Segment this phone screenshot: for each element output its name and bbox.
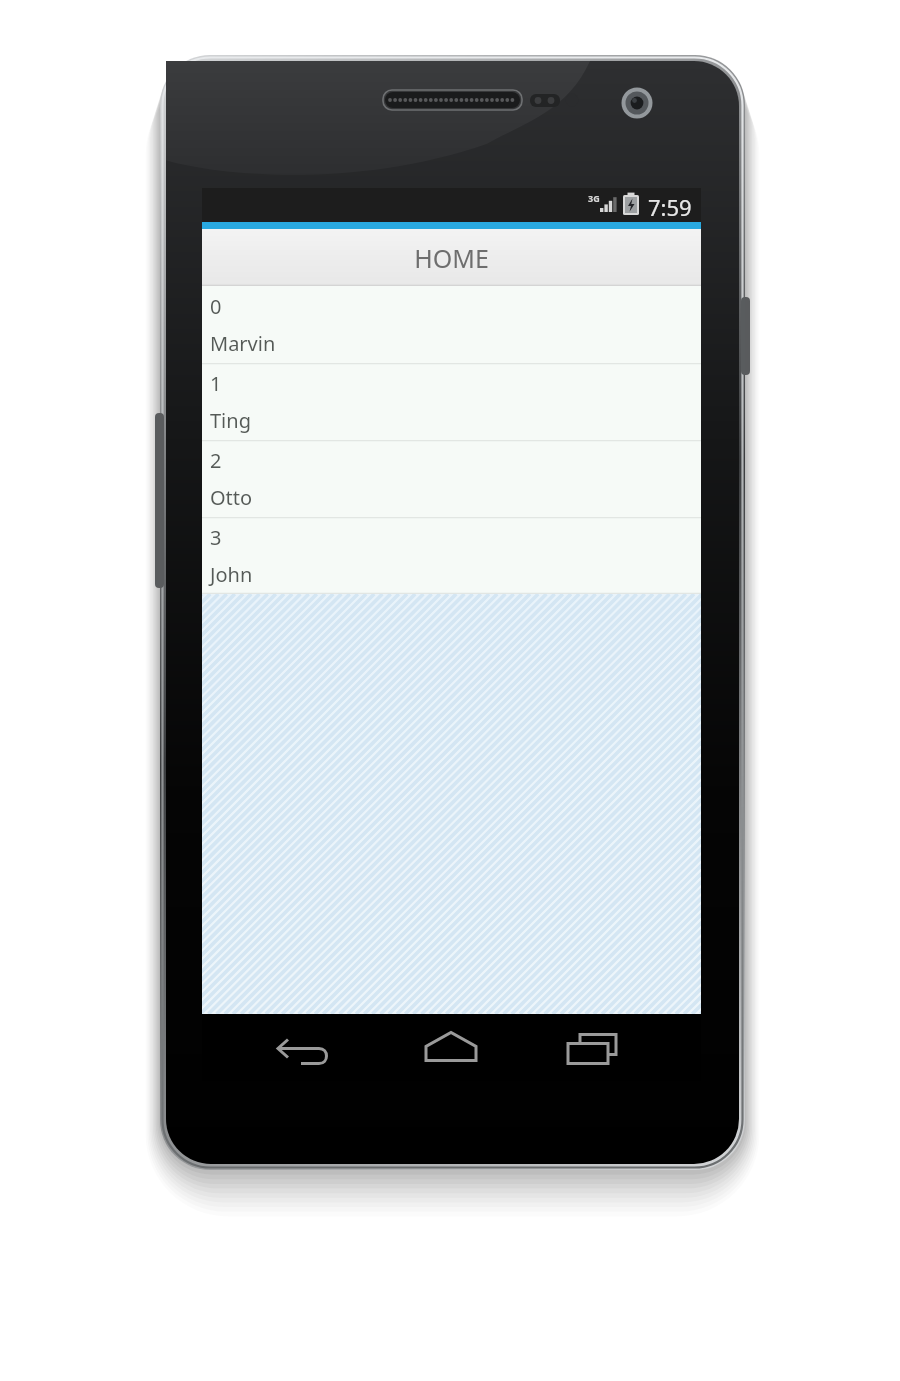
staticText: Otto <box>210 484 253 511</box>
staticText: 0 <box>210 293 222 320</box>
staticText: 1 <box>210 370 222 397</box>
button[interactable]: Recent apps <box>542 1018 642 1081</box>
staticText: 3G <box>588 192 600 204</box>
staticText: Ting <box>210 407 251 434</box>
button[interactable]: HOME <box>202 229 701 286</box>
staticText: HOME <box>414 241 489 275</box>
staticText: 3 <box>210 524 222 551</box>
button[interactable]: 2 <box>202 440 701 517</box>
staticText: Marvin <box>210 330 276 357</box>
button[interactable]: 1 <box>202 363 701 440</box>
button[interactable]: Back <box>260 1018 360 1081</box>
button[interactable]: 3 <box>202 517 701 594</box>
staticText: John <box>210 561 253 588</box>
staticText: 2 <box>210 447 222 474</box>
button[interactable]: 0 <box>202 286 701 363</box>
staticText: 7:59 <box>648 192 692 222</box>
button[interactable]: Home <box>401 1018 501 1081</box>
